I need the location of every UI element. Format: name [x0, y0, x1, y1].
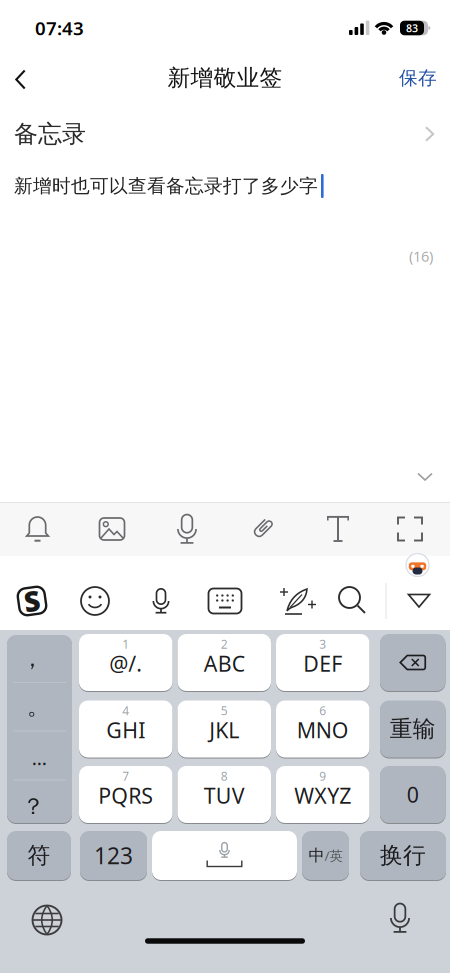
staticText: 符 [27, 842, 50, 869]
button[interactable]: Keyboard layout [202, 581, 248, 621]
staticText: 4 [122, 702, 129, 718]
button[interactable]: 。 [7, 683, 72, 731]
staticText: ？ [22, 793, 45, 820]
staticText: TUV [204, 781, 245, 810]
button[interactable]: Insert photo [91, 508, 133, 550]
button[interactable]: Handwriting [272, 580, 324, 621]
staticText: 。 [27, 693, 50, 721]
staticText: 8 [221, 768, 228, 784]
button[interactable]: 符 [7, 831, 71, 880]
button[interactable]: 6 [276, 700, 369, 757]
button[interactable]: 3 [276, 634, 369, 691]
button[interactable]: 2 [177, 634, 271, 691]
staticText: JKL [209, 716, 239, 744]
staticText: 3 [319, 636, 326, 652]
staticText: 中 [308, 846, 324, 865]
staticText: 备忘录 [14, 119, 86, 149]
staticText: 5 [221, 702, 228, 718]
button[interactable]: 重输 [380, 700, 445, 757]
button[interactable]: Search [332, 580, 374, 622]
button[interactable]: ？ [7, 780, 72, 823]
staticText: PQRS [98, 781, 153, 810]
staticText: ， [21, 645, 44, 673]
staticText: ... [32, 747, 47, 770]
button[interactable]: Dismiss keyboard [411, 466, 439, 487]
staticText: DEF [303, 649, 342, 678]
staticText: 重输 [390, 715, 436, 743]
button[interactable]: Full screen [389, 508, 431, 549]
staticText: 1 [122, 636, 129, 652]
button[interactable]: Voice [142, 582, 180, 620]
button[interactable]: ， [7, 635, 72, 682]
button[interactable]: 换行 [360, 831, 446, 880]
button[interactable]: Attachment [241, 508, 283, 550]
staticText: WXYZ [294, 781, 351, 810]
button[interactable]: 0 [380, 766, 445, 823]
staticText: ABC [204, 649, 245, 678]
button[interactable]: 保存 [393, 60, 443, 95]
staticText: (16) [409, 246, 433, 266]
staticText: 7 [122, 768, 129, 784]
button[interactable]: 备忘录 [0, 119, 450, 149]
button[interactable]: Chinese / English [302, 831, 349, 880]
button[interactable]: Voice input [164, 506, 210, 552]
staticText: @/. [109, 649, 142, 678]
button[interactable]: 4 [79, 700, 172, 757]
button[interactable]: Switch keyboard [24, 897, 69, 942]
button[interactable]: Collapse toolbar [401, 587, 437, 614]
button[interactable]: 123 [80, 831, 147, 880]
button[interactable]: 8 [177, 766, 271, 823]
staticText: /英 [324, 847, 342, 864]
button[interactable]: 9 [276, 766, 369, 823]
button[interactable]: Text style [318, 507, 358, 551]
button[interactable]: Reminder [15, 507, 59, 551]
button[interactable]: Space [152, 831, 297, 880]
staticText: 换行 [380, 842, 426, 869]
staticText: MNO [297, 716, 349, 744]
staticText: 保存 [399, 66, 437, 89]
staticText: 2 [221, 636, 228, 652]
button[interactable]: 1 [79, 634, 172, 691]
button[interactable]: Back [7, 61, 34, 97]
button[interactable]: Sogou [10, 579, 54, 623]
button[interactable]: Delete [380, 634, 445, 691]
staticText: 9 [319, 768, 326, 784]
staticText: 新增敬业签 [167, 64, 282, 92]
staticText: 07:43 [35, 16, 84, 40]
staticText: 新增时也可以查看备忘录打了多少字 [14, 174, 318, 197]
button[interactable]: 7 [79, 766, 172, 823]
staticText: 123 [94, 840, 133, 870]
button[interactable]: Dictation [377, 895, 423, 941]
staticText: 0 [407, 780, 419, 809]
button[interactable]: ... [7, 731, 72, 780]
button[interactable]: Emoji [74, 580, 116, 622]
staticText: 6 [319, 702, 326, 718]
staticText: GHI [106, 716, 145, 744]
staticText: 83 [406, 21, 418, 35]
staticText: S [24, 582, 40, 619]
button[interactable]: 5 [177, 700, 271, 757]
